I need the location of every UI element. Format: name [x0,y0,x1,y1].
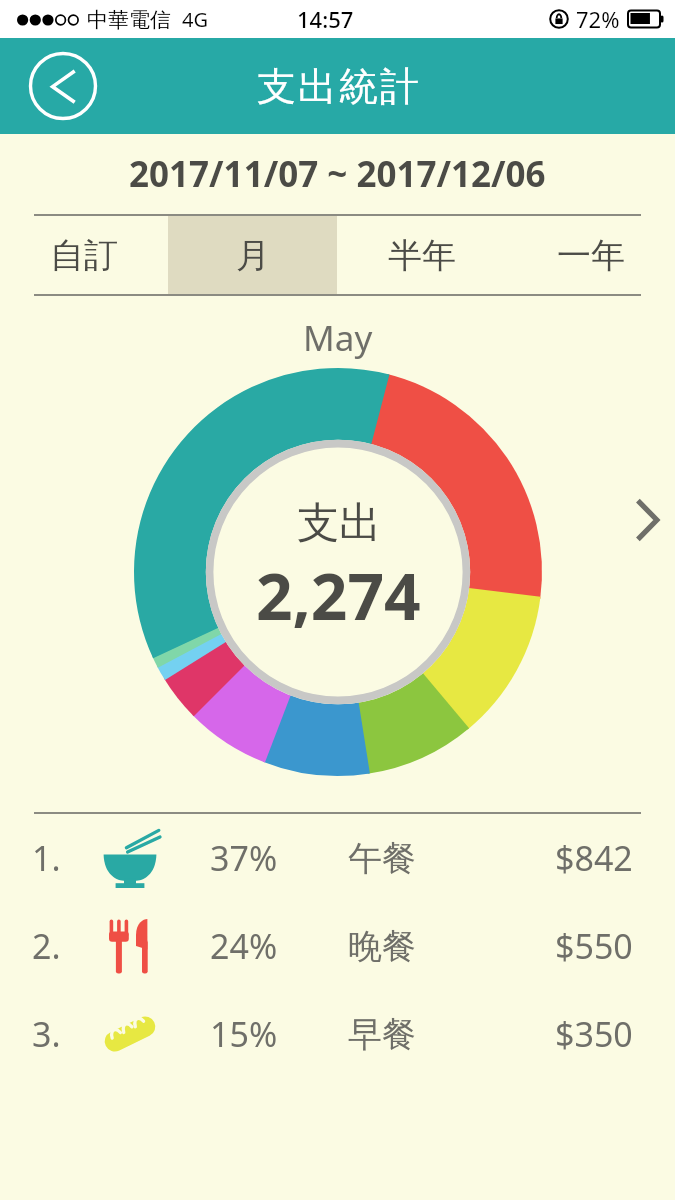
staticText: 支出 [297,497,381,550]
button[interactable]: Next month [619,492,675,548]
staticText: 支出統計 [256,62,420,111]
button[interactable]: 半年 [337,216,506,294]
staticText: 早餐 [348,1013,416,1056]
button[interactable]: 自訂 [0,216,168,294]
staticText: 自訂 [50,234,118,277]
staticText: 半年 [388,234,456,277]
staticText: $842 [555,835,633,881]
staticText: 一年 [557,234,625,277]
staticText: 24% [210,923,278,969]
staticText: $350 [555,1011,633,1057]
button[interactable]: 3. [0,990,675,1078]
staticText: 14:57 [297,4,354,34]
button[interactable]: 1. [0,814,675,902]
button[interactable]: 一年 [506,216,675,294]
button[interactable]: Back [28,51,98,121]
button[interactable]: 2. [0,902,675,990]
staticText: $550 [555,923,633,969]
staticText: 月 [236,234,270,277]
button[interactable]: 月 [168,216,337,294]
staticText: 15% [210,1011,278,1057]
staticText: 2,274 [256,552,421,639]
staticText: 午餐 [348,837,416,880]
staticText: 3. [32,1011,61,1057]
staticText: 4G [182,6,208,33]
staticText: 2017/11/07 ~ 2017/12/06 [129,150,546,198]
staticText: 72% [576,4,620,34]
staticText: 晚餐 [348,925,416,968]
staticText: May [303,314,373,362]
staticText: 中華電信 [87,7,171,33]
staticText: 37% [210,835,278,881]
staticText: 2. [32,923,61,969]
staticText: 1. [32,835,61,881]
